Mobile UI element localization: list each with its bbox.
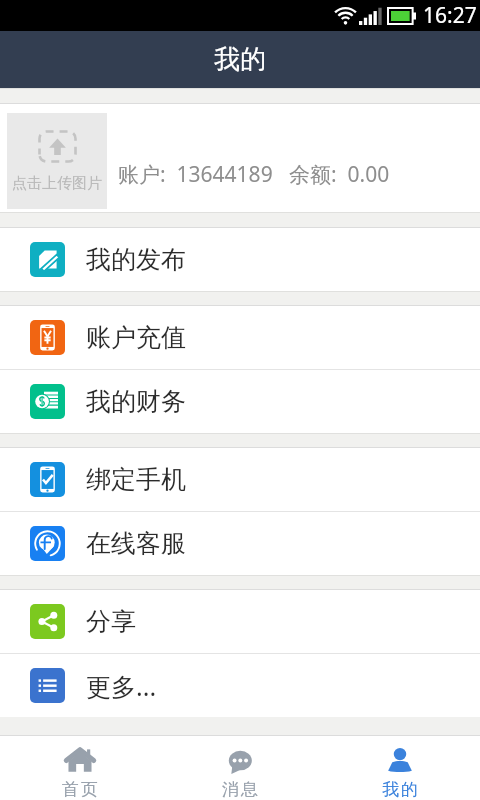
staticText: 点击上传图片 — [12, 174, 102, 193]
button[interactable]: 分享 — [0, 590, 480, 653]
button[interactable]: 消息 — [160, 736, 320, 800]
button[interactable]: 点击上传图片 — [7, 113, 107, 209]
button[interactable]: 我的 — [320, 736, 480, 800]
staticText: 16:27 — [423, 1, 477, 30]
staticText: 我的财务 — [86, 386, 186, 417]
staticText: 我的 — [214, 43, 266, 76]
button[interactable]: 我的财务 — [0, 370, 480, 433]
staticText: 账户充值 — [86, 322, 186, 353]
button[interactable]: 绑定手机 — [0, 448, 480, 511]
button[interactable]: 在线客服 — [0, 512, 480, 575]
staticText: 更多... — [86, 669, 157, 703]
staticText: 我的 — [381, 779, 419, 800]
staticText: 分享 — [86, 606, 136, 637]
staticText: 首页 — [61, 779, 99, 800]
button[interactable]: 我的发布 — [0, 228, 480, 291]
staticText: 绑定手机 — [86, 464, 186, 495]
staticText: 在线客服 — [86, 528, 186, 559]
staticText: 消息 — [221, 779, 259, 800]
button[interactable]: 更多... — [0, 654, 480, 717]
button[interactable]: 账户充值 — [0, 306, 480, 369]
staticText: 我的发布 — [86, 244, 186, 275]
staticText: 账户: 13644189 余额: 0.00 — [118, 160, 390, 189]
button[interactable]: 首页 — [0, 736, 160, 800]
